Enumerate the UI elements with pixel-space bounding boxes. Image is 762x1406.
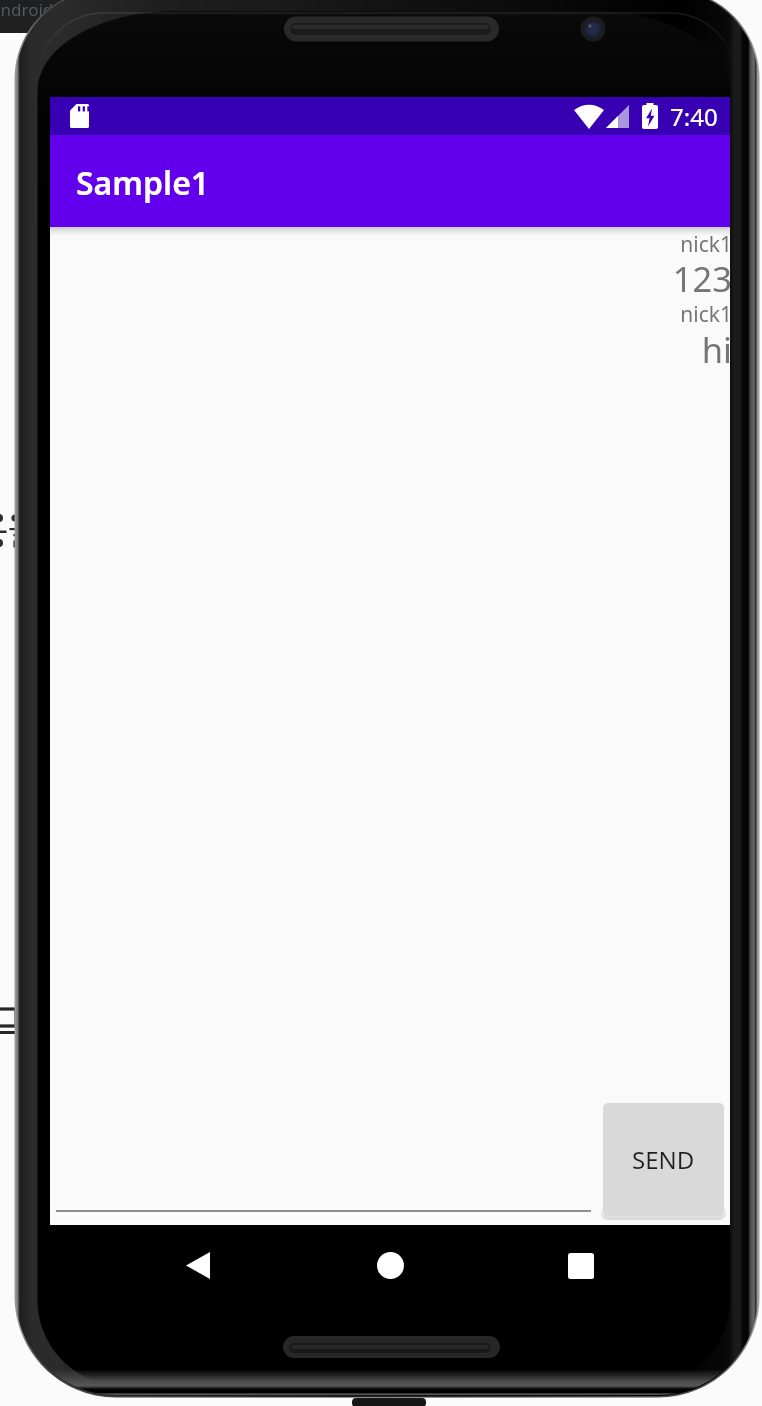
button[interactable]: Recent apps — [494, 1225, 668, 1306]
button[interactable]: nick1 — [52, 300, 730, 329]
staticText: SEND — [632, 1143, 695, 1176]
button[interactable]: nick1 — [52, 230, 730, 259]
button[interactable]: hi — [52, 326, 730, 373]
staticText: 7:40 — [670, 100, 718, 133]
button[interactable]: Home — [303, 1225, 477, 1306]
button[interactable]: 123 — [52, 255, 730, 302]
button[interactable]: Sample1 — [50, 135, 730, 227]
staticText: Sample1 — [76, 161, 210, 205]
staticText: androidx — [0, 0, 63, 21]
button[interactable]: SEND — [603, 1103, 724, 1216]
button[interactable]: Back — [111, 1225, 285, 1306]
